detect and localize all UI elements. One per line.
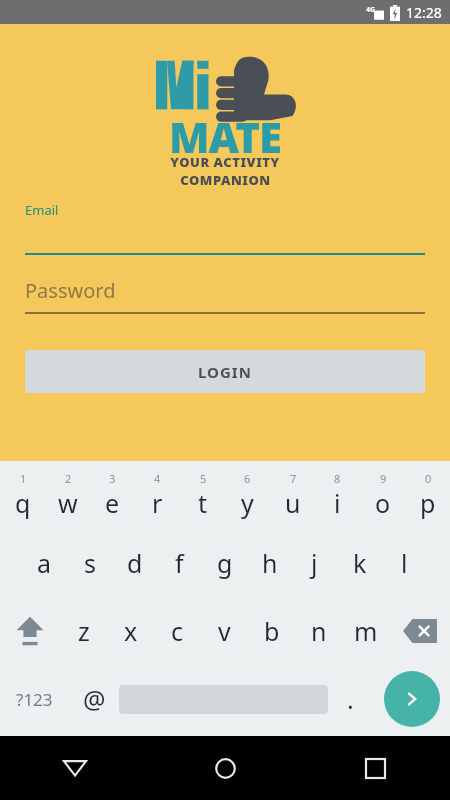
staticText: Password [25, 277, 116, 304]
staticText: h [262, 546, 278, 580]
staticText: 8 [334, 471, 341, 486]
staticText: YOUR ACTIVITY [170, 153, 280, 171]
staticText: y [241, 486, 254, 520]
button[interactable]: . [328, 665, 373, 733]
staticText: 6 [244, 471, 251, 486]
button[interactable]: Shift [0, 597, 60, 665]
button[interactable]: h [247, 529, 292, 597]
staticText: 12:28 [406, 3, 442, 22]
staticText: v [218, 614, 231, 648]
button[interactable]: l [382, 529, 427, 597]
staticText: Email [25, 201, 59, 219]
button[interactable]: Home [150, 736, 300, 800]
staticText: . [347, 682, 354, 716]
button[interactable]: g [202, 529, 247, 597]
staticText: 9 [380, 471, 387, 486]
staticText: a [37, 546, 52, 580]
staticText: s [84, 546, 96, 580]
button[interactable]: m [342, 597, 389, 665]
button[interactable]: 2 [45, 461, 90, 529]
staticText: 4 [154, 471, 161, 486]
button[interactable]: a [22, 529, 67, 597]
staticText: c [171, 614, 184, 648]
staticText: 1 [20, 471, 27, 486]
staticText: e [105, 486, 120, 520]
button[interactable]: 4 [135, 461, 180, 529]
staticText: t [198, 486, 208, 520]
button[interactable]: s [67, 529, 112, 597]
button[interactable]: Backspace [389, 597, 450, 665]
staticText: g [217, 546, 233, 580]
staticText: l [401, 546, 408, 580]
button[interactable]: 0 [405, 461, 450, 529]
button[interactable]: 1 [0, 461, 45, 529]
staticText: m [354, 614, 378, 648]
button[interactable]: d [112, 529, 157, 597]
button[interactable]: Recents [300, 736, 450, 800]
staticText: i [334, 486, 341, 520]
button[interactable]: Enter [384, 671, 440, 727]
button[interactable]: 7 [270, 461, 315, 529]
button[interactable]: b [248, 597, 295, 665]
button[interactable]: Back [0, 736, 150, 800]
button[interactable]: Space [119, 665, 328, 733]
button[interactable]: j [292, 529, 337, 597]
button[interactable]: z [60, 597, 107, 665]
button[interactable]: f [157, 529, 202, 597]
staticText: d [127, 546, 143, 580]
staticText: q [15, 486, 31, 520]
button[interactable]: c [154, 597, 201, 665]
staticText: COMPANION [180, 171, 271, 189]
staticText: j [311, 546, 318, 580]
button[interactable]: x [107, 597, 154, 665]
button[interactable]: ?123 [0, 665, 69, 733]
staticText: 7 [290, 471, 297, 486]
button[interactable]: Email [25, 201, 425, 255]
staticText: u [285, 486, 301, 520]
button[interactable]: 3 [90, 461, 135, 529]
button[interactable]: LOGIN [25, 350, 425, 393]
staticText: f [175, 546, 184, 580]
button[interactable]: 8 [315, 461, 360, 529]
button[interactable]: 9 [360, 461, 405, 529]
button[interactable]: v [201, 597, 248, 665]
staticText: @ [83, 682, 106, 716]
staticText: ?123 [16, 688, 53, 711]
staticText: 2 [65, 471, 72, 486]
staticText: n [311, 614, 327, 648]
staticText: k [353, 546, 367, 580]
staticText: b [264, 614, 280, 648]
staticText: x [124, 614, 138, 648]
staticText: p [420, 486, 436, 520]
staticText: o [375, 486, 391, 520]
button[interactable]: @ [69, 665, 119, 733]
button[interactable]: 6 [225, 461, 270, 529]
staticText: 4G [366, 5, 376, 15]
staticText: MATE [169, 108, 282, 165]
button[interactable]: 5 [180, 461, 225, 529]
staticText: r [152, 486, 163, 520]
staticText: 0 [425, 471, 432, 486]
staticText: LOGIN [198, 362, 252, 382]
button[interactable]: k [337, 529, 382, 597]
staticText: 3 [109, 471, 116, 486]
button[interactable]: Password [25, 277, 425, 314]
staticText: 5 [200, 471, 207, 486]
staticText: z [78, 614, 90, 648]
button[interactable]: n [295, 597, 342, 665]
staticText: w [58, 486, 78, 520]
